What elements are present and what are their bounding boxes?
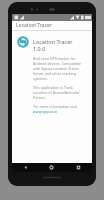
button[interactable]: Home	[38, 163, 65, 172]
button[interactable]: Location Tracer	[12, 21, 92, 30]
button[interactable]: Recent apps	[65, 163, 92, 172]
staticText: Location Tracer 1.0.0	[33, 38, 86, 52]
staticText: For more information visit	[33, 104, 78, 109]
staticText: This application is Track Location of As…	[33, 85, 86, 100]
other: Location Tracer logo	[17, 36, 29, 48]
button[interactable]: www.spysat.in	[33, 109, 58, 114]
staticText: www.spysat.in	[33, 109, 58, 114]
staticText: Location Tracer	[16, 22, 52, 29]
staticText: Real-time GPS tracker for Android device…	[33, 56, 86, 81]
button[interactable]: Back	[12, 163, 38, 172]
